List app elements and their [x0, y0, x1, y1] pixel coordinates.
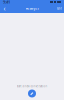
staticText: 9:41 [3, 0, 10, 5]
staticText: Edit [57, 7, 62, 10]
staticText: Messages [25, 7, 38, 10]
staticText: ‹ [3, 4, 5, 13]
staticText: Start a new conversation [16, 84, 47, 88]
button[interactable]: New message [27, 89, 36, 98]
button[interactable]: Back [1, 4, 8, 13]
button[interactable]: Edit [56, 4, 63, 13]
